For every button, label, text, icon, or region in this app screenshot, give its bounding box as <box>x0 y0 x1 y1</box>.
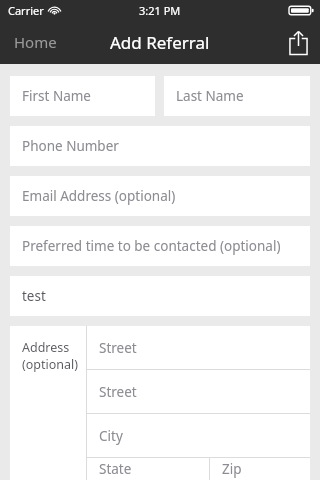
staticText: Carrier <box>8 3 44 18</box>
button[interactable]: Home <box>0 20 69 64</box>
staticText: Last Name <box>176 87 244 105</box>
staticText: Home <box>14 32 57 52</box>
staticText: 3:21 PM <box>139 3 181 18</box>
staticText: (optional) <box>22 356 79 373</box>
staticText: Zip <box>222 460 242 478</box>
staticText: Add Referral <box>110 31 210 54</box>
staticText: Phone Number <box>22 137 119 155</box>
button[interactable]: Share <box>277 20 320 64</box>
button[interactable]: State <box>86 458 209 480</box>
staticText: Email Address (optional) <box>22 187 176 205</box>
button[interactable]: Email Address (optional) <box>10 176 310 216</box>
staticText: City <box>99 427 123 445</box>
button[interactable]: Street <box>86 326 310 369</box>
staticText: Preferred time to be contacted (optional… <box>22 237 281 255</box>
button[interactable]: Preferred time to be contacted (optional… <box>10 226 310 266</box>
staticText: State <box>99 460 132 478</box>
staticText: Street <box>99 383 137 401</box>
button[interactable]: City <box>86 414 310 457</box>
staticText: test <box>22 287 46 305</box>
button[interactable]: Last Name <box>164 76 310 116</box>
staticText: Street <box>99 339 137 357</box>
button[interactable]: First Name <box>10 76 155 116</box>
staticText: First Name <box>22 87 91 105</box>
button[interactable]: Street <box>86 370 310 413</box>
staticText: Address <box>22 339 70 356</box>
button[interactable]: Zip <box>209 458 310 480</box>
button[interactable]: test <box>10 276 310 316</box>
button[interactable]: Phone Number <box>10 126 310 166</box>
